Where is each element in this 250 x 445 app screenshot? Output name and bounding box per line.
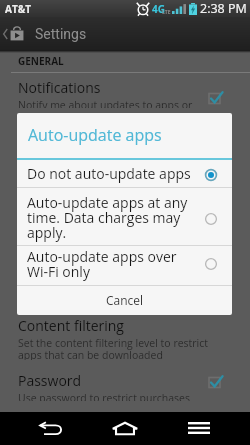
staticText: Cancel — [106, 292, 144, 308]
staticText: LTE — [162, 9, 171, 16]
staticText: Auto-update apps at any time. Data charg… — [27, 193, 188, 242]
staticText: Use password to restrict purchases — [18, 391, 190, 401]
staticText: Settings — [35, 26, 87, 42]
staticText: Auto-update apps over Wi-Fi only — [27, 247, 177, 281]
staticText: Do not auto-update apps — [27, 164, 191, 183]
button[interactable]: Back — [10, 412, 83, 445]
staticText: 2:38 PM — [200, 0, 247, 17]
button[interactable]: Do not auto-update apps — [17, 160, 232, 187]
button[interactable]: Auto-update apps over Wi-Fi only — [17, 246, 232, 285]
button[interactable]: Auto-update apps at any time. Data charg… — [17, 188, 232, 245]
staticText: Content filtering — [18, 316, 124, 335]
staticText: GENERAL — [18, 54, 64, 68]
staticText: 4G — [152, 2, 165, 16]
staticText: Auto-update apps — [28, 124, 162, 146]
staticText: Notifications — [18, 78, 101, 97]
button[interactable]: Home — [83, 412, 167, 445]
staticText: Notify me about updates to apps or — [18, 98, 193, 108]
button[interactable]: Password — [0, 371, 250, 401]
staticText: Set the content filtering level to restr… — [18, 336, 209, 360]
staticText: Password — [18, 371, 82, 390]
button[interactable]: Recent apps — [167, 412, 250, 445]
button[interactable]: Cancel — [17, 286, 232, 315]
button[interactable]: Notifications — [0, 78, 250, 108]
staticText: AT&T — [5, 2, 31, 16]
button[interactable]: Navigate up — [0, 17, 34, 50]
button[interactable]: Content filtering — [0, 316, 250, 360]
